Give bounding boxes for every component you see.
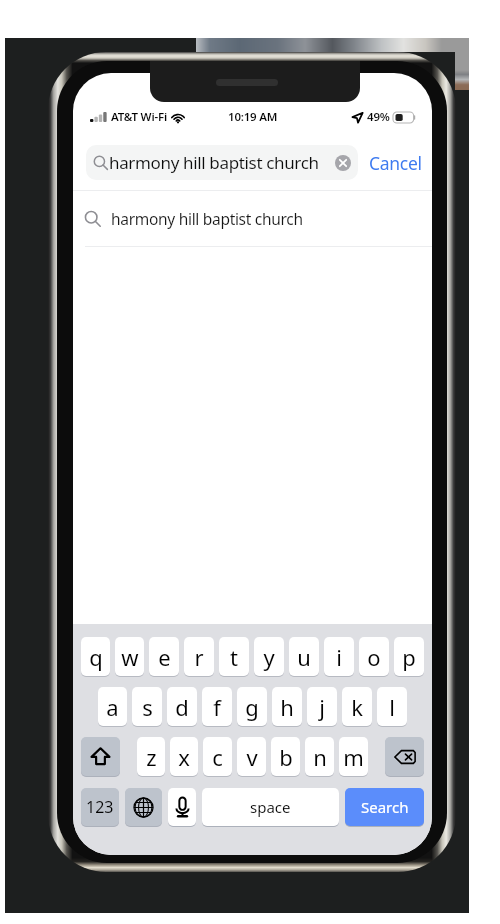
staticText: r xyxy=(194,642,204,672)
button[interactable]: y xyxy=(254,637,284,676)
button[interactable]: i xyxy=(324,637,354,676)
staticText: o xyxy=(367,642,381,672)
staticText: m xyxy=(343,742,364,772)
staticText: g xyxy=(245,692,259,722)
staticText: y xyxy=(263,642,275,672)
button[interactable]: n xyxy=(305,737,334,776)
button[interactable]: r xyxy=(184,637,214,676)
button[interactable]: q xyxy=(81,637,110,676)
button[interactable]: space xyxy=(202,788,339,826)
button[interactable]: t xyxy=(219,637,249,676)
button[interactable]: 123 xyxy=(81,788,119,826)
button[interactable]: u xyxy=(289,637,319,676)
button[interactable]: p xyxy=(394,637,424,676)
button[interactable]: Change keyboard xyxy=(125,788,162,826)
staticText: u xyxy=(297,642,311,672)
button[interactable]: z xyxy=(137,737,165,776)
button[interactable]: Search xyxy=(345,788,424,826)
staticText: f xyxy=(213,692,221,722)
staticText: space xyxy=(250,797,291,817)
staticText: j xyxy=(319,692,325,722)
button[interactable]: g xyxy=(237,687,267,726)
staticText: i xyxy=(336,642,342,672)
button[interactable]: harmony hill baptist church xyxy=(86,145,358,180)
button[interactable]: harmony hill baptist church xyxy=(73,191,432,246)
staticText: AT&T Wi-Fi xyxy=(111,109,167,125)
staticText: x xyxy=(178,742,190,772)
staticText: t xyxy=(230,642,238,672)
staticText: harmony hill baptist church xyxy=(111,208,303,229)
staticText: z xyxy=(146,742,157,772)
button[interactable]: b xyxy=(271,737,300,776)
button[interactable]: f xyxy=(202,687,232,726)
staticText: b xyxy=(279,742,293,772)
button[interactable]: Dictate xyxy=(168,788,196,826)
staticText: w xyxy=(121,642,139,672)
staticText: 49% xyxy=(367,109,390,125)
staticText: harmony hill baptist church xyxy=(109,151,319,174)
button[interactable]: s xyxy=(132,687,162,726)
button[interactable]: o xyxy=(359,637,389,676)
staticText: p xyxy=(402,642,416,672)
button[interactable]: Clear text xyxy=(335,155,351,171)
button[interactable]: d xyxy=(167,687,197,726)
button[interactable]: m xyxy=(339,737,368,776)
staticText: l xyxy=(389,692,395,722)
button[interactable]: c xyxy=(203,737,232,776)
button[interactable]: j xyxy=(307,687,337,726)
button[interactable]: l xyxy=(377,687,407,726)
button[interactable]: Backspace xyxy=(385,737,424,776)
staticText: q xyxy=(89,642,103,672)
button[interactable]: Shift xyxy=(81,737,120,776)
button[interactable]: v xyxy=(237,737,266,776)
button[interactable]: h xyxy=(272,687,302,726)
staticText: v xyxy=(246,742,258,772)
staticText: k xyxy=(351,692,363,722)
button[interactable]: Cancel xyxy=(358,145,422,180)
staticText: 10:19 AM xyxy=(228,109,278,125)
staticText: n xyxy=(313,742,327,772)
staticText: a xyxy=(106,692,119,722)
button[interactable]: e xyxy=(149,637,179,676)
button[interactable]: a xyxy=(98,687,127,726)
button[interactable]: x xyxy=(170,737,198,776)
staticText: c xyxy=(212,742,223,772)
staticText: e xyxy=(158,642,171,672)
staticText: 123 xyxy=(86,796,114,818)
staticText: d xyxy=(175,692,189,722)
staticText: h xyxy=(280,692,294,722)
button[interactable]: k xyxy=(342,687,372,726)
staticText: Cancel xyxy=(369,151,422,175)
staticText: Search xyxy=(361,797,409,817)
button[interactable]: w xyxy=(115,637,144,676)
staticText: s xyxy=(142,692,153,722)
